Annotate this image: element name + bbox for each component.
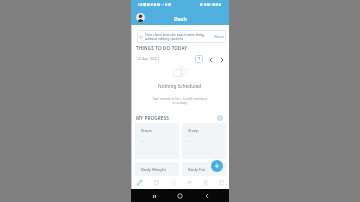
staticText: Sleep [188, 128, 199, 134]
staticText: Your client sees the exact same thing, w… [145, 32, 205, 41]
button[interactable]: Body Weight [135, 162, 179, 176]
staticText: Dash [174, 15, 187, 22]
button[interactable]: Next day [218, 56, 225, 63]
button[interactable]: Recents [150, 192, 158, 200]
button[interactable]: Previous day [207, 56, 214, 63]
button[interactable]: Notes [197, 176, 213, 189]
staticText: Steps [141, 128, 152, 134]
button[interactable]: Back [203, 192, 211, 200]
staticText: THINGS TO DO TODAY [136, 45, 188, 51]
staticText: T [198, 56, 201, 62]
button[interactable]: Body Fat [182, 162, 226, 176]
button[interactable]: Workouts [131, 176, 148, 189]
button[interactable]: Today [195, 55, 203, 63]
button[interactable]: Sleep [182, 123, 226, 159]
button[interactable]: Add [211, 160, 223, 172]
staticText: Take a break or hit + to add a workout o… [152, 97, 208, 105]
button[interactable]: Your client sees the exact same thing, w… [137, 30, 226, 43]
staticText: 14 Apr 2021 [136, 56, 160, 62]
button[interactable]: Home [176, 192, 184, 200]
staticText: Nothing Scheduled [158, 83, 202, 90]
staticText: Body Fat [188, 167, 206, 173]
button[interactable]: Profile [136, 13, 145, 22]
staticText: - - - [141, 138, 147, 143]
staticText: - - - [188, 138, 194, 143]
staticText: Body Weight [141, 167, 166, 173]
staticText: Share [214, 34, 224, 39]
button[interactable]: Steps [135, 123, 179, 159]
button[interactable]: Photos [213, 176, 229, 189]
button[interactable]: Settings [217, 115, 223, 121]
button[interactable]: Calendar [148, 176, 165, 189]
button[interactable]: Progress [181, 176, 197, 189]
staticText: MY PROGRESS [136, 115, 169, 121]
button[interactable]: Nutrition [165, 176, 181, 189]
